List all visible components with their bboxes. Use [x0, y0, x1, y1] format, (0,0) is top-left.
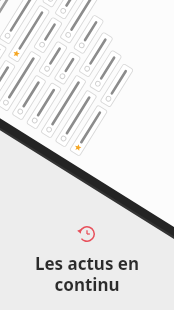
staticText: Les actus en continu: [0, 252, 174, 296]
button[interactable]: Actus en continu: [77, 224, 97, 244]
